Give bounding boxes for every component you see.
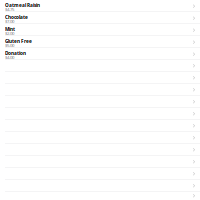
button[interactable] — [0, 120, 200, 131]
staticText: $2.00 — [5, 31, 14, 36]
button[interactable] — [0, 168, 200, 179]
button[interactable] — [0, 72, 200, 83]
staticText: Donation — [5, 50, 26, 56]
button[interactable]: Donation — [0, 48, 200, 59]
button[interactable]: Gluten Free — [0, 36, 200, 47]
staticText: Chocolate — [5, 14, 28, 20]
button[interactable] — [0, 84, 200, 95]
button[interactable] — [0, 180, 200, 191]
button[interactable] — [0, 156, 200, 167]
button[interactable]: Chocolate — [0, 12, 200, 23]
button[interactable] — [0, 96, 200, 107]
staticText: Mint — [5, 26, 15, 32]
button[interactable] — [0, 132, 200, 143]
staticText: $4.75 — [5, 7, 14, 12]
button[interactable] — [0, 60, 200, 71]
button[interactable]: Mint — [0, 24, 200, 35]
staticText: $7.00 — [5, 19, 14, 24]
button[interactable]: Oatmeal Raisin — [0, 0, 200, 11]
staticText: Oatmeal Raisin — [5, 2, 40, 8]
staticText: $4.00 — [5, 55, 14, 60]
staticText: $5.00 — [5, 43, 14, 48]
staticText: Gluten Free — [5, 38, 32, 44]
button[interactable] — [0, 108, 200, 119]
button[interactable] — [0, 144, 200, 155]
